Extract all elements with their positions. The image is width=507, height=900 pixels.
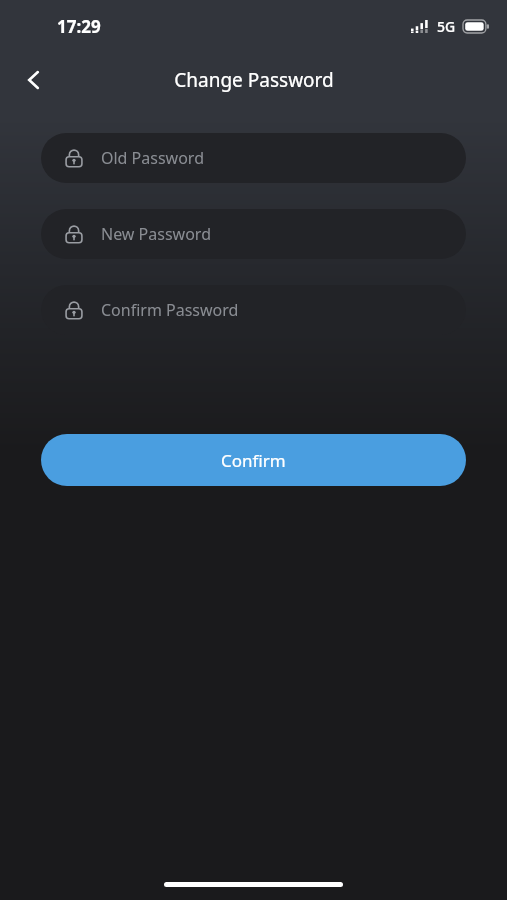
staticText: Confirm	[221, 449, 286, 472]
staticText: 5G	[437, 17, 456, 36]
button[interactable]: Confirm Password	[41, 285, 466, 335]
staticText: 17:29	[57, 15, 101, 38]
staticText: Confirm Password	[101, 299, 239, 321]
staticText: Change Password	[174, 67, 334, 93]
button[interactable]: Confirm	[41, 434, 466, 486]
staticText: Old Password	[101, 147, 204, 169]
staticText: New Password	[101, 223, 211, 245]
button[interactable]: New Password	[41, 209, 466, 259]
button[interactable]: Back	[12, 58, 56, 102]
button[interactable]: Old Password	[41, 133, 466, 183]
